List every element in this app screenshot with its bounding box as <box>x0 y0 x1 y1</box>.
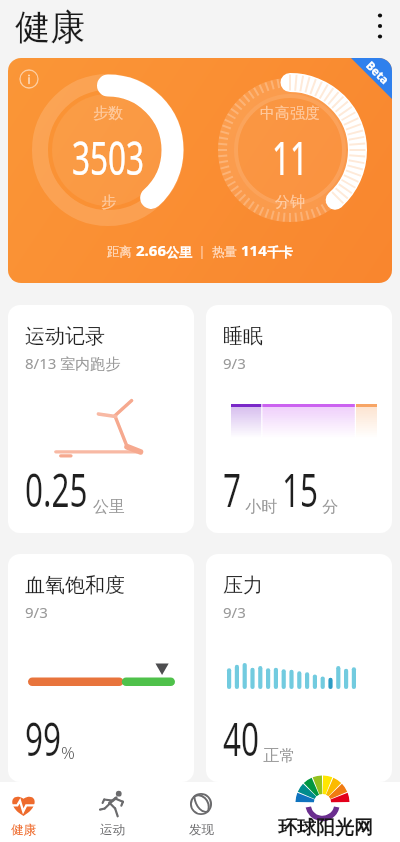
button[interactable]: 睡眠 <box>206 305 392 533</box>
staticText: 小时 <box>241 495 282 517</box>
staticText: Beta <box>362 58 392 88</box>
staticText: 0.25 <box>25 459 88 520</box>
button[interactable]: Info <box>15 65 43 93</box>
staticText: 运动记录 <box>25 324 105 349</box>
staticText: 距离 <box>107 243 136 260</box>
button[interactable]: 运动 <box>68 782 156 842</box>
button[interactable]: 压力 <box>206 554 392 782</box>
staticText: | <box>192 243 212 260</box>
staticText: 2.66 <box>136 240 166 260</box>
staticText: 公里 <box>93 497 125 517</box>
staticText: 分 <box>318 495 339 517</box>
staticText: 千卡 <box>267 244 293 260</box>
staticText: 114 <box>241 240 267 260</box>
staticText: 9/3 <box>223 602 246 622</box>
staticText: 3503 <box>72 127 144 188</box>
staticText: 15 <box>282 459 318 520</box>
staticText: 发现 <box>189 822 214 838</box>
staticText: 健康 <box>11 822 36 838</box>
staticText: 环球阳光网 <box>278 816 373 840</box>
staticText: % <box>61 741 75 764</box>
button[interactable]: Info <box>8 58 392 283</box>
staticText: 8/13 室内跑步 <box>25 353 121 373</box>
button[interactable]: More options <box>360 6 400 46</box>
staticText: 步数 <box>93 104 123 123</box>
button[interactable]: 发现 <box>157 782 245 842</box>
staticText: 40 <box>223 708 259 769</box>
staticText: 血氧饱和度 <box>25 573 125 598</box>
staticText: 分钟 <box>275 193 305 212</box>
staticText: 公里 <box>166 244 192 260</box>
button[interactable]: 健康 <box>0 782 67 842</box>
staticText: 9/3 <box>25 602 48 622</box>
button[interactable]: 运动记录 <box>8 305 194 533</box>
staticText: 99 <box>25 708 61 769</box>
staticText: 11 <box>272 127 308 188</box>
staticText: 运动 <box>100 822 125 838</box>
button[interactable]: 血氧饱和度 <box>8 554 194 782</box>
staticText: 中高强度 <box>260 104 320 123</box>
staticText: 9/3 <box>223 353 246 373</box>
staticText: 7 <box>223 459 241 520</box>
staticText: 睡眠 <box>223 324 263 349</box>
staticText: 压力 <box>223 573 263 598</box>
staticText: 热量 <box>212 243 241 260</box>
staticText: 健康 <box>15 5 85 49</box>
staticText: 步 <box>101 193 116 212</box>
staticText: 正常 <box>259 744 296 766</box>
